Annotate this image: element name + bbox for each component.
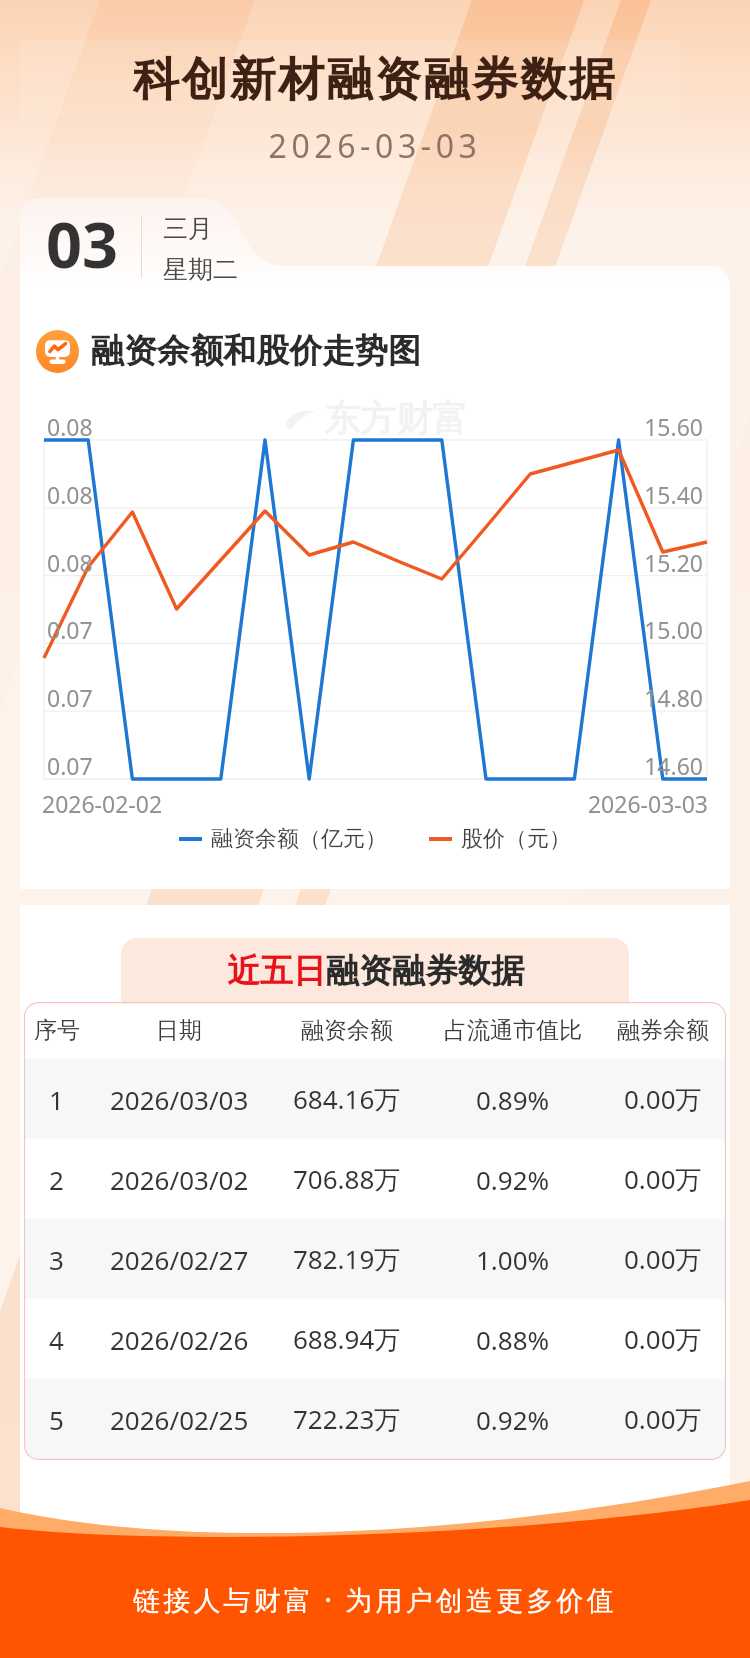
staticText: 15.20 — [600, 547, 703, 578]
button[interactable]: 5 — [24, 1379, 726, 1459]
button[interactable]: 融资余额（亿元） — [179, 825, 387, 853]
staticText: 东方财富 — [312, 1218, 432, 1256]
staticText: 0.89% — [476, 1082, 550, 1117]
staticText: 0.00万 — [624, 1321, 702, 1357]
staticText: 近五日融资融券数据 — [227, 950, 524, 992]
staticText: 0.00万 — [624, 1081, 702, 1117]
staticText: 2026/02/25 — [110, 1402, 249, 1437]
staticText: 股价（元） — [461, 825, 571, 853]
staticText: 722.23万 — [293, 1401, 401, 1437]
staticText: 15.00 — [600, 614, 703, 645]
button[interactable]: 4 — [24, 1299, 726, 1379]
staticText: 融资余额和股价走势图 — [91, 330, 421, 372]
staticText: 0.88% — [476, 1322, 550, 1357]
button[interactable]: 3 — [24, 1219, 726, 1299]
staticText: 0.08 — [47, 411, 93, 442]
staticText: 1.00% — [476, 1242, 550, 1277]
staticText: 2026/03/02 — [110, 1162, 249, 1197]
staticText: 1 — [49, 1082, 64, 1117]
staticText: 688.94万 — [293, 1321, 401, 1357]
staticText: 14.60 — [600, 750, 703, 781]
staticText: 链接人与财富 · 为用户创造更多价值 — [0, 1581, 750, 1618]
staticText: 0.92% — [476, 1162, 550, 1197]
staticText: 2026-03-03 — [520, 788, 708, 819]
staticText: 占流通市值比 — [444, 1016, 582, 1045]
other: Chart — [36, 330, 79, 373]
staticText: 0.92% — [476, 1402, 550, 1437]
button[interactable]: 03 — [46, 204, 238, 290]
button[interactable]: 2 — [24, 1139, 726, 1219]
staticText: 15.40 — [600, 479, 703, 510]
staticText: 星期二 — [163, 254, 238, 285]
staticText: 科创新材融资融券数据 — [0, 51, 750, 109]
staticText: 0.08 — [47, 547, 93, 578]
staticText: 2026-02-02 — [42, 788, 163, 819]
staticText: 2026/03/03 — [110, 1082, 249, 1117]
staticText: 2026/02/26 — [110, 1322, 249, 1357]
staticText: 706.88万 — [293, 1161, 401, 1197]
staticText: 5 — [49, 1402, 64, 1437]
staticText: 0.00万 — [624, 1241, 702, 1277]
button[interactable]: Chart — [36, 329, 421, 373]
staticText: 4 — [49, 1322, 64, 1357]
staticText: 2026-03-03 — [0, 124, 750, 168]
button[interactable]: 股价（元） — [429, 825, 571, 853]
staticText: 三月 — [163, 213, 213, 244]
staticText: 融券余额 — [617, 1016, 709, 1045]
staticText: 14.80 — [600, 682, 703, 713]
staticText: 融资余额 — [301, 1016, 393, 1045]
button[interactable]: 1 — [24, 1059, 726, 1139]
staticText: 融资余额（亿元） — [211, 825, 387, 853]
staticText: 0.08 — [47, 479, 93, 510]
staticText: 0.07 — [47, 750, 93, 781]
staticText: 684.16万 — [293, 1081, 401, 1117]
staticText: 2026/02/27 — [110, 1242, 249, 1277]
staticText: 3 — [49, 1242, 64, 1277]
staticText: 0.00万 — [624, 1161, 702, 1197]
staticText: 15.60 — [600, 411, 703, 442]
staticText: 2 — [49, 1162, 64, 1197]
staticText: 0.00万 — [624, 1401, 702, 1437]
staticText: 东方财富 — [324, 396, 468, 441]
staticText: 日期 — [156, 1016, 202, 1045]
staticText: 782.19万 — [293, 1241, 401, 1277]
staticText: 0.07 — [47, 614, 93, 645]
staticText: 03 — [46, 201, 119, 287]
staticText: 序号 — [34, 1016, 80, 1045]
staticText: 0.07 — [47, 682, 93, 713]
